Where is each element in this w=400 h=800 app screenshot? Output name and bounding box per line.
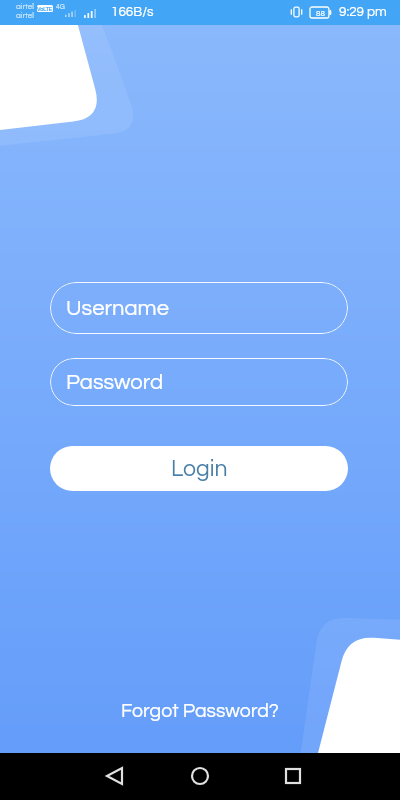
staticText: 4G [56,3,65,10]
staticText: VoLTE [37,6,53,12]
staticText: Password [66,371,164,394]
staticText: airtel [16,11,34,19]
button[interactable]: Back [90,752,138,799]
staticText: Username [66,297,169,320]
button[interactable]: Home [176,752,224,799]
button[interactable]: Forgot Password? [115,695,285,727]
button[interactable]: Login [50,446,348,491]
staticText: airtel [16,2,34,10]
staticText: Login [171,457,228,481]
button[interactable]: Username [50,282,348,334]
staticText: 166B/s [111,5,154,19]
button[interactable]: Recents [269,752,317,799]
staticText: 88 [316,9,325,17]
staticText: 9:29 pm [339,5,387,19]
button[interactable]: Password [50,358,348,406]
